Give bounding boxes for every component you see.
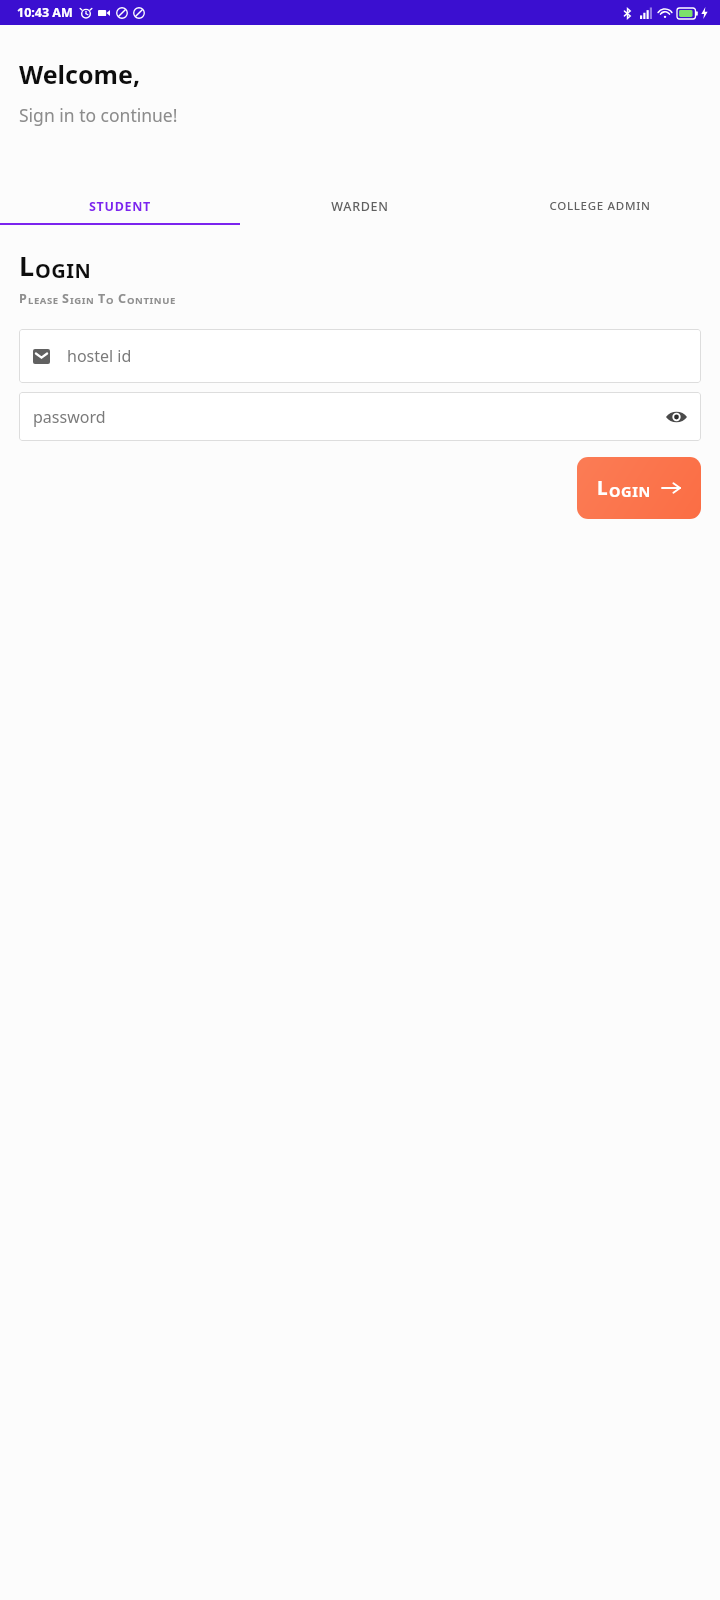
- staticText: IGIN: [70, 294, 95, 307]
- staticText: WARDEN: [331, 198, 389, 215]
- staticText: OGIN: [609, 481, 651, 501]
- staticText: S: [62, 290, 70, 307]
- staticText: L: [597, 475, 609, 501]
- button[interactable]: Show password: [665, 406, 687, 428]
- staticText: hostel id: [67, 345, 687, 367]
- staticText: LEASE: [28, 294, 59, 307]
- staticText: OGIN: [35, 257, 92, 284]
- staticText: P: [19, 290, 28, 307]
- button[interactable]: COLLEGE ADMIN: [480, 189, 720, 223]
- staticText: COLLEGE ADMIN: [549, 198, 651, 214]
- staticText: 10:43 AM: [17, 4, 73, 21]
- staticText: T: [98, 290, 106, 307]
- button[interactable]: WARDEN: [240, 189, 480, 223]
- staticText: L: [19, 247, 35, 284]
- staticText: O: [106, 294, 115, 307]
- button[interactable]: password: [19, 392, 701, 441]
- staticText: STUDENT: [89, 198, 151, 215]
- staticText: ONTINUE: [127, 294, 176, 307]
- staticText: password: [33, 406, 665, 428]
- button[interactable]: STUDENT: [0, 189, 240, 223]
- button[interactable]: Email: [19, 329, 701, 383]
- button[interactable]: L: [577, 457, 701, 519]
- staticText: Sign in to continue!: [19, 103, 178, 127]
- staticText: Welcome,: [19, 57, 141, 91]
- staticText: C: [118, 290, 127, 307]
- other: Email: [33, 349, 50, 364]
